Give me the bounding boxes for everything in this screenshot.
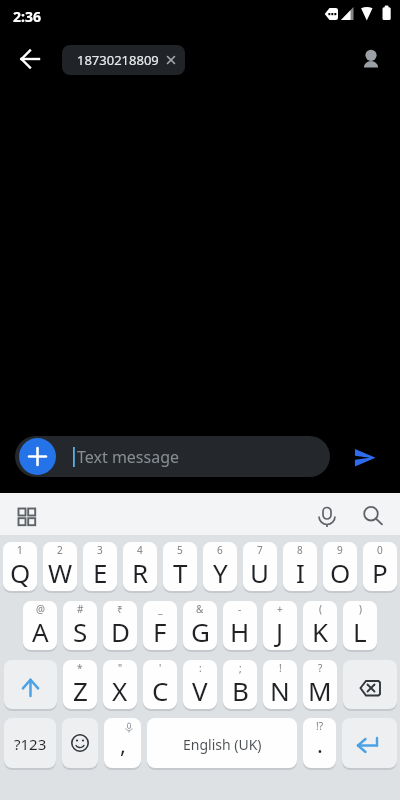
button[interactable]: [4, 660, 57, 711]
button[interactable]: [342, 718, 397, 770]
button[interactable]: !?: [303, 718, 336, 770]
staticText: *: [77, 661, 83, 675]
button[interactable]: Text message: [15, 436, 330, 477]
staticText: ): [359, 602, 362, 616]
staticText: 5: [177, 543, 183, 557]
staticText: B: [232, 673, 249, 708]
staticText: ?123: [14, 734, 47, 754]
staticText: :: [199, 661, 202, 675]
button[interactable]: [357, 501, 385, 529]
staticText: Text message: [77, 446, 180, 468]
staticText: O: [330, 555, 351, 590]
staticText: 4: [137, 543, 143, 557]
staticText: T: [173, 555, 188, 590]
button[interactable]: 1: [3, 542, 37, 593]
button[interactable]: &: [183, 601, 217, 652]
staticText: ₹: [117, 602, 123, 616]
staticText: -: [238, 602, 242, 616]
staticText: &: [196, 602, 204, 616]
staticText: English (UK): [183, 735, 262, 754]
staticText: 2: [57, 543, 63, 557]
staticText: H: [230, 614, 250, 649]
staticText: N: [270, 673, 290, 708]
button[interactable]: :: [183, 660, 217, 711]
button[interactable]: [19, 438, 56, 475]
button[interactable]: English (UK): [147, 718, 297, 770]
button[interactable]: ?: [303, 660, 337, 711]
button[interactable]: @: [23, 601, 57, 652]
staticText: F: [153, 614, 167, 649]
button[interactable]: #: [63, 601, 97, 652]
staticText: M: [308, 673, 332, 708]
staticText: I: [296, 555, 305, 590]
button[interactable]: [12, 41, 48, 77]
staticText: K: [312, 614, 329, 649]
staticText: ?: [318, 661, 323, 675]
staticText: #: [77, 602, 84, 616]
button[interactable]: ,: [104, 718, 141, 770]
staticText: R: [132, 555, 149, 590]
button[interactable]: [340, 444, 388, 470]
staticText: 6: [217, 543, 223, 557]
button[interactable]: ?123: [4, 718, 56, 770]
button[interactable]: _: [143, 601, 177, 652]
staticText: 2:36: [13, 7, 41, 26]
button[interactable]: [62, 718, 98, 770]
button[interactable]: +: [263, 601, 297, 652]
staticText: 9: [337, 543, 343, 557]
staticText: 7: [257, 543, 263, 557]
staticText: ": [118, 661, 123, 675]
button[interactable]: [311, 501, 339, 529]
button[interactable]: [343, 660, 397, 711]
staticText: ': [159, 661, 162, 675]
staticText: W: [48, 555, 73, 590]
button[interactable]: 0: [363, 542, 397, 593]
staticText: C: [152, 673, 169, 708]
staticText: +: [277, 602, 283, 616]
staticText: 0: [377, 543, 383, 557]
button[interactable]: ": [103, 660, 137, 711]
staticText: L: [353, 614, 367, 649]
staticText: G: [191, 614, 210, 649]
button[interactable]: 3: [83, 542, 117, 593]
staticText: E: [93, 555, 108, 590]
staticText: (: [319, 602, 322, 616]
button[interactable]: 5: [163, 542, 197, 593]
button[interactable]: -: [223, 601, 257, 652]
staticText: S: [73, 614, 88, 649]
staticText: _: [158, 602, 163, 616]
staticText: A: [32, 614, 49, 649]
staticText: V: [192, 673, 208, 708]
button[interactable]: [353, 42, 389, 78]
staticText: !?: [316, 719, 324, 733]
staticText: ,: [120, 729, 126, 759]
button[interactable]: 4: [123, 542, 157, 593]
button[interactable]: !: [263, 660, 297, 711]
button[interactable]: 6: [203, 542, 237, 593]
staticText: X: [112, 673, 128, 708]
button[interactable]: 9: [323, 542, 357, 593]
staticText: Y: [213, 555, 228, 590]
button[interactable]: 7: [243, 542, 277, 593]
button[interactable]: *: [63, 660, 97, 711]
button[interactable]: (: [303, 601, 337, 652]
staticText: J: [276, 614, 284, 649]
staticText: U: [250, 555, 270, 590]
staticText: Z: [73, 673, 88, 708]
staticText: 3: [97, 543, 103, 557]
button[interactable]: 18730218809: [62, 45, 185, 75]
staticText: 18730218809: [77, 51, 159, 69]
button[interactable]: ₹: [103, 601, 137, 652]
staticText: P: [372, 555, 388, 590]
button[interactable]: ': [143, 660, 177, 711]
staticText: D: [111, 614, 130, 649]
staticText: 8: [297, 543, 303, 557]
staticText: 1: [17, 543, 23, 557]
staticText: .: [317, 729, 323, 759]
button[interactable]: [13, 502, 41, 530]
button[interactable]: 8: [283, 542, 317, 593]
button[interactable]: 2: [43, 542, 77, 593]
staticText: !: [279, 661, 282, 675]
button[interactable]: ): [343, 601, 377, 652]
button[interactable]: ;: [223, 660, 257, 711]
